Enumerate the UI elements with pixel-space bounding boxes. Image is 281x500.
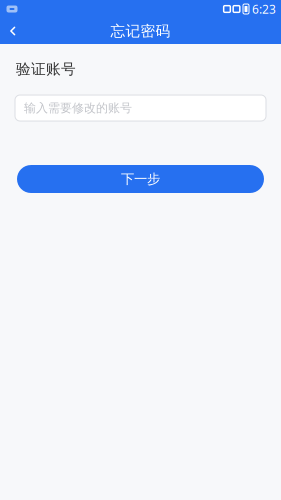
staticText: 6:23 [252, 1, 276, 17]
staticText: 忘记密码 [110, 22, 170, 40]
staticText: 验证账号 [16, 60, 76, 78]
staticText: 输入需要修改的账号 [24, 101, 132, 115]
button[interactable]: Back [0, 18, 26, 44]
button[interactable]: 下一步 [17, 165, 264, 193]
button[interactable]: 输入需要修改的账号 [15, 95, 266, 121]
staticText: 下一步 [121, 171, 160, 187]
